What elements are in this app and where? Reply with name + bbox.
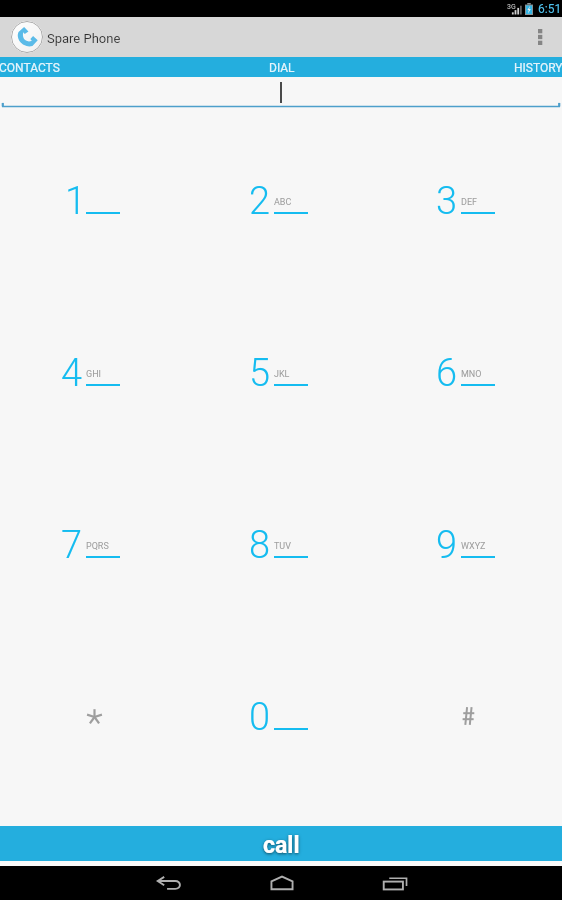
- button[interactable]: Back: [145, 866, 192, 900]
- staticText: 8: [249, 523, 271, 568]
- button[interactable]: 2: [188, 113, 375, 285]
- staticText: HISTORY: [514, 61, 562, 75]
- staticText: 6: [436, 351, 458, 396]
- staticText: 2: [249, 179, 271, 224]
- staticText: Spare Phone: [47, 31, 121, 46]
- staticText: 7: [61, 523, 83, 568]
- staticText: TUV: [274, 541, 291, 552]
- button[interactable]: 3: [375, 113, 562, 285]
- button[interactable]: More options: [517, 17, 562, 57]
- button[interactable]: [375, 629, 562, 801]
- staticText: 9: [436, 523, 458, 568]
- staticText: 4: [61, 351, 83, 396]
- staticText: 6:51: [538, 2, 562, 16]
- button[interactable]: 4: [0, 285, 188, 457]
- staticText: 5: [249, 351, 271, 396]
- staticText: JKL: [274, 369, 290, 380]
- button[interactable]: 8: [188, 457, 375, 629]
- button[interactable]: DIAL: [188, 57, 375, 77]
- button[interactable]: 5: [188, 285, 375, 457]
- button[interactable]: 1: [0, 113, 188, 285]
- button[interactable]: HISTORY: [375, 57, 562, 77]
- staticText: DEF: [461, 197, 477, 208]
- button[interactable]: [0, 77, 562, 113]
- staticText: ABC: [274, 197, 292, 208]
- staticText: WXYZ: [461, 541, 486, 552]
- button[interactable]: CONTACTS: [0, 57, 188, 77]
- staticText: CONTACTS: [0, 61, 60, 75]
- button[interactable]: 9: [375, 457, 562, 629]
- staticText: 3: [436, 179, 458, 224]
- staticText: GHI: [86, 369, 101, 380]
- staticText: DIAL: [269, 61, 295, 75]
- button[interactable]: 7: [0, 457, 188, 629]
- staticText: 3G: [507, 3, 516, 11]
- button[interactable]: 6: [375, 285, 562, 457]
- staticText: MNO: [461, 369, 482, 380]
- button[interactable]: call: [0, 826, 562, 861]
- button[interactable]: 0: [188, 629, 375, 801]
- button[interactable]: Recent apps: [371, 866, 418, 900]
- staticText: call: [263, 832, 300, 859]
- staticText: 0: [249, 695, 271, 740]
- staticText: 1: [65, 179, 87, 224]
- staticText: PQRS: [86, 541, 109, 552]
- button[interactable]: Home: [258, 866, 305, 900]
- button[interactable]: [0, 629, 188, 801]
